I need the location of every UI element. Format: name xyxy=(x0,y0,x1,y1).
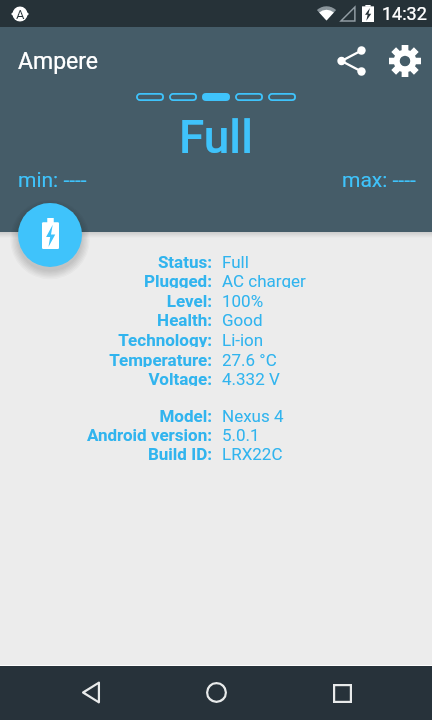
staticText: Plugged: xyxy=(144,271,212,288)
staticText: Health: xyxy=(157,310,212,327)
staticText: Voltage: xyxy=(148,369,212,386)
staticText: Full xyxy=(222,252,249,269)
staticText: min: ---- xyxy=(18,168,87,193)
staticText: max: ---- xyxy=(342,168,416,193)
button[interactable]: Back xyxy=(63,666,119,720)
button[interactable]: Measure charging current xyxy=(18,203,82,267)
button[interactable]: Temperature: xyxy=(0,350,432,367)
staticText: 5.0.1 xyxy=(222,425,260,442)
staticText: 4.332 V xyxy=(222,369,280,386)
button[interactable]: Level: xyxy=(0,291,432,308)
staticText: Temperature: xyxy=(109,350,212,367)
staticText: Ampere xyxy=(18,48,99,75)
staticText: 27.6 °C xyxy=(222,350,277,367)
staticText: AC charger xyxy=(222,271,306,288)
staticText: Li-ion xyxy=(222,330,264,347)
button[interactable]: Plugged: xyxy=(0,271,432,288)
staticText: Model: xyxy=(159,406,212,423)
button[interactable]: Recent apps xyxy=(314,666,370,720)
staticText: Technology: xyxy=(118,330,212,347)
staticText: Status: xyxy=(157,252,212,269)
staticText: A xyxy=(16,7,25,22)
button[interactable]: Android version: xyxy=(0,425,432,442)
button[interactable]: Technology: xyxy=(0,330,432,347)
staticText: Android version: xyxy=(86,425,212,442)
staticText: 14:32 xyxy=(382,3,427,24)
button[interactable]: Health: xyxy=(0,310,432,327)
button[interactable]: Share xyxy=(328,38,374,84)
button[interactable]: Model: xyxy=(0,406,432,423)
button[interactable]: Settings xyxy=(382,38,428,84)
button[interactable]: Build ID: xyxy=(0,444,432,461)
staticText: Full xyxy=(179,110,253,164)
staticText: Good xyxy=(222,310,263,327)
staticText: Build ID: xyxy=(147,444,212,461)
staticText: 100% xyxy=(222,291,264,308)
button[interactable]: Voltage: xyxy=(0,369,432,386)
button[interactable]: Home xyxy=(188,666,244,720)
button[interactable]: Status: xyxy=(0,252,432,269)
staticText: Nexus 4 xyxy=(222,406,284,423)
staticText: LRX22C xyxy=(222,444,283,461)
staticText: Level: xyxy=(166,291,212,308)
